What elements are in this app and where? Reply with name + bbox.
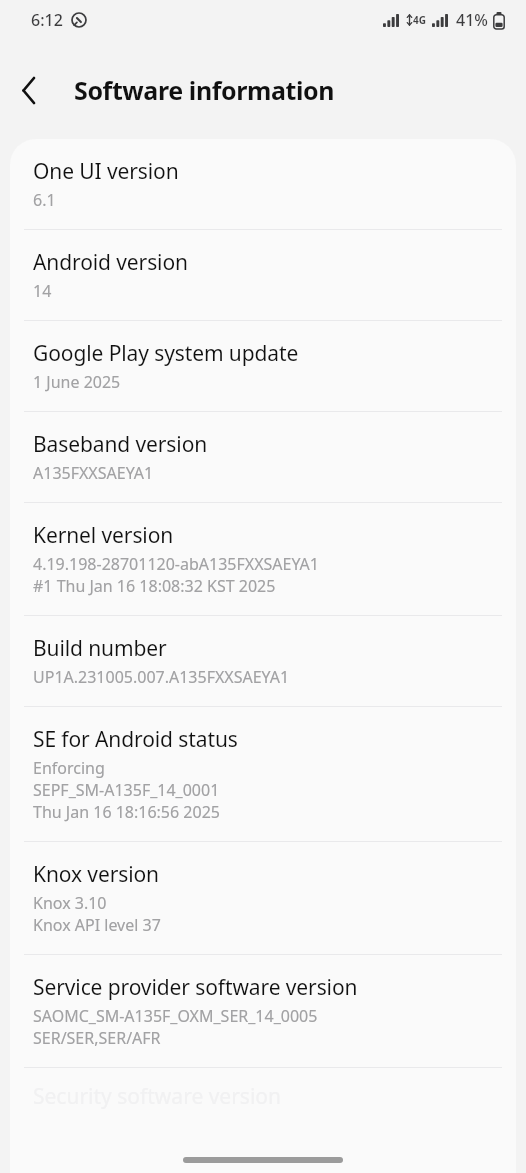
staticText: Thu Jan 16 18:16:56 2025 [33,801,220,823]
button[interactable]: Baseband version [10,412,516,502]
staticText: Enforcing [33,757,105,779]
staticText: Build number [33,634,167,663]
staticText: Kernel version [33,521,174,550]
staticText: Software information [74,73,335,107]
staticText: A135FXXSAEYA1 [33,462,154,484]
button[interactable]: Service provider software version [10,955,516,1067]
staticText: #1 Thu Jan 16 18:08:32 KST 2025 [33,575,276,597]
button[interactable]: SE for Android status [10,707,516,841]
staticText: 6.1 [33,189,56,211]
button[interactable]: Google Play system update [10,321,516,411]
staticText: 6:12 [31,9,63,31]
staticText: Android version [33,248,188,277]
button[interactable]: Android version [10,230,516,320]
staticText: UP1A.231005.007.A135FXXSAEYA1 [33,666,290,688]
staticText: Google Play system update [33,339,299,368]
button[interactable]: Knox version [10,842,516,954]
button[interactable]: Kernel version [10,503,516,615]
staticText: 4.19.198-28701120-abA135FXXSAEYA1 [33,553,319,575]
staticText: Knox API level 37 [33,914,161,936]
staticText: Knox version [33,860,159,889]
staticText: SE for Android status [33,725,238,754]
staticText: 4G [413,13,426,27]
staticText: Security software version [33,1082,282,1111]
staticText: 1 June 2025 [33,371,121,393]
staticText: 41% [456,9,488,31]
staticText: One UI version [33,157,179,186]
staticText: 14 [33,280,52,302]
staticText: SER/SER,SER/AFR [33,1027,161,1049]
staticText: SAOMC_SM-A135F_OXM_SER_14_0005 [33,1005,318,1027]
button[interactable]: Back [0,61,58,119]
button[interactable]: One UI version [10,139,516,229]
staticText: SEPF_SM-A135F_14_0001 [33,779,220,801]
staticText: Knox 3.10 [33,892,107,914]
staticText: Service provider software version [33,973,358,1002]
button[interactable]: Build number [10,616,516,706]
staticText: Baseband version [33,430,208,459]
